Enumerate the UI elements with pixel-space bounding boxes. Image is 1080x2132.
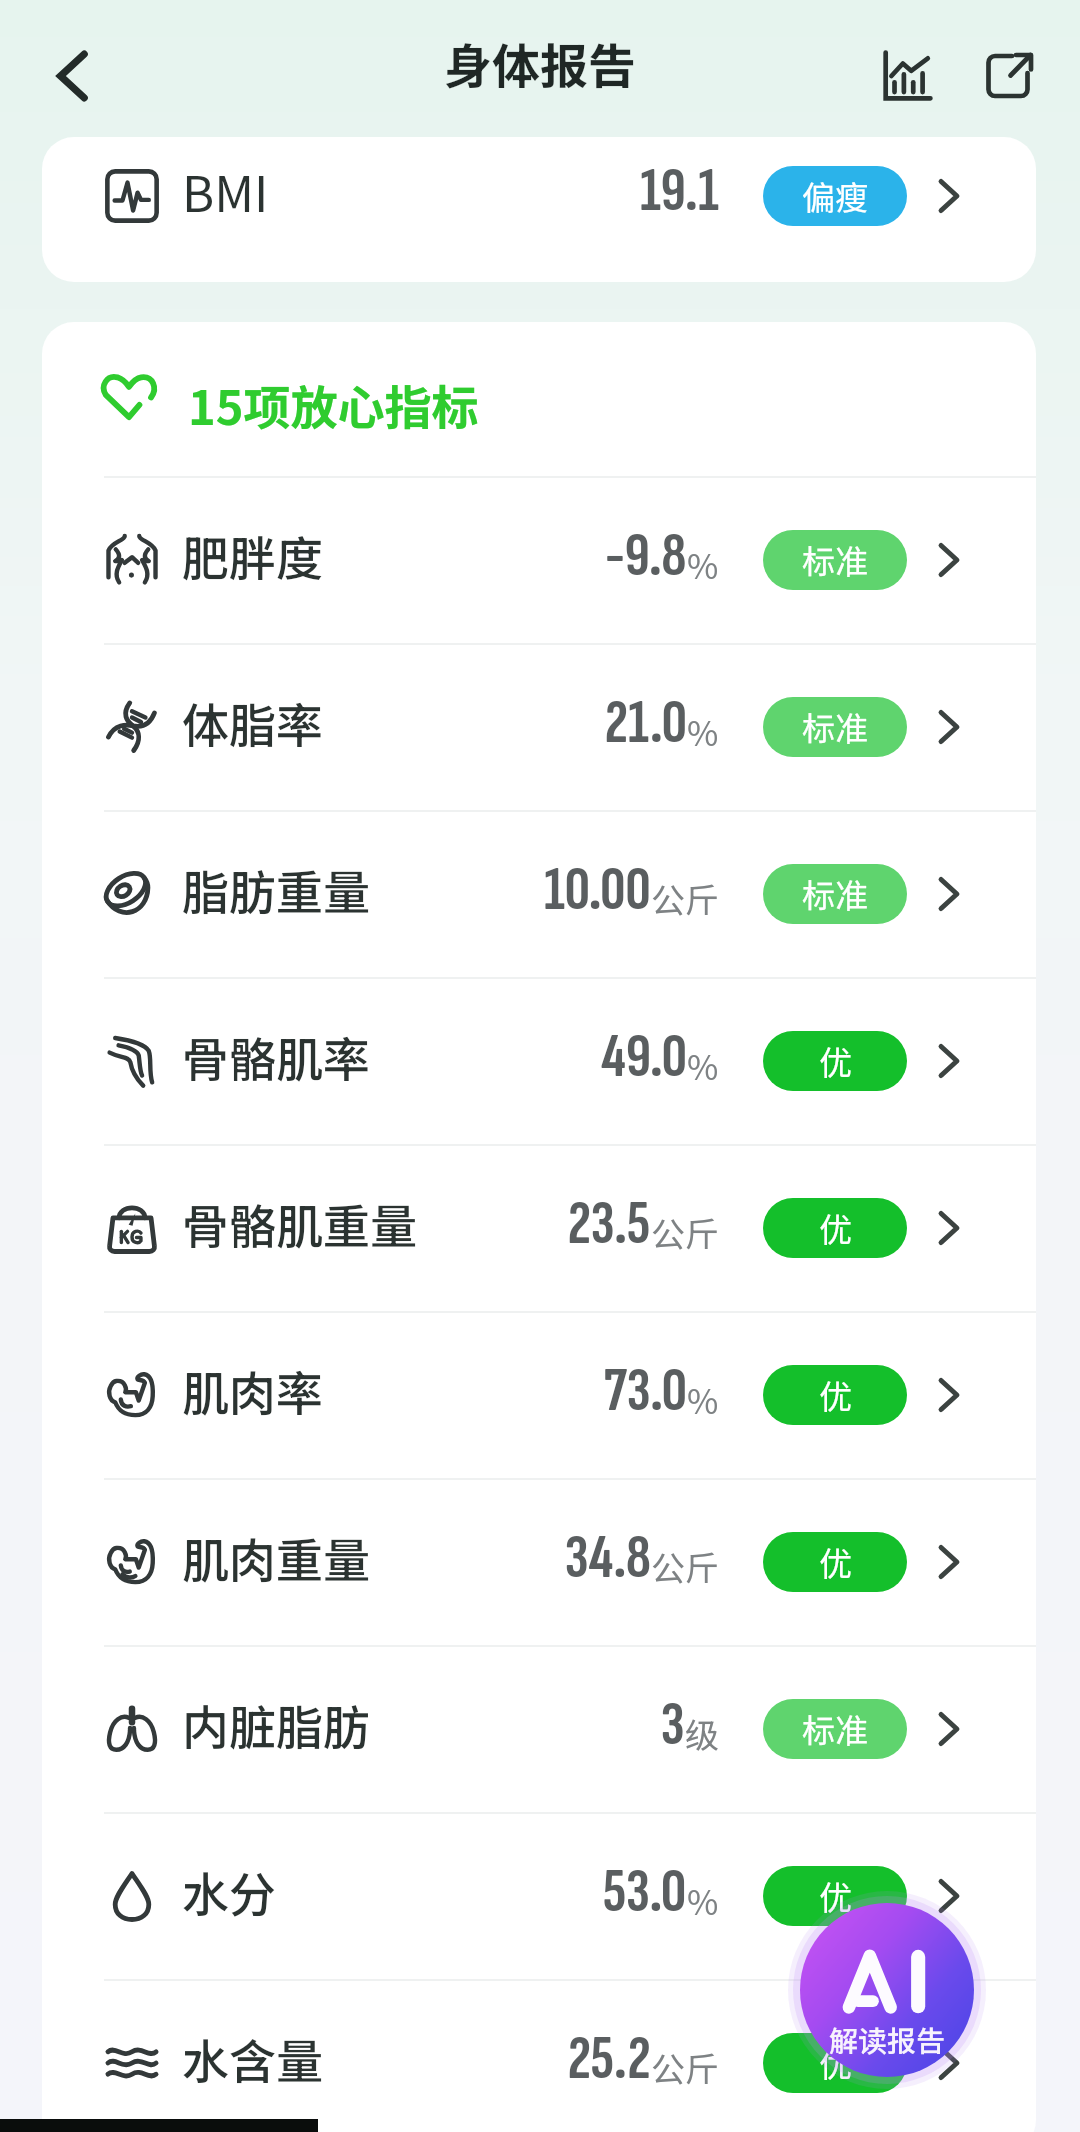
staticText: 73.0: [604, 1353, 687, 1429]
staticText: 骨骼肌率: [182, 1022, 370, 1090]
staticText: 标准: [802, 870, 868, 918]
staticText: 53.0: [603, 1854, 687, 1930]
staticText: 优: [819, 2039, 852, 2087]
button[interactable]: 肌肉重量: [42, 1480, 1036, 1645]
staticText: 水含量: [182, 2024, 323, 2092]
staticText: BMI: [182, 155, 269, 226]
button[interactable]: 内脏脂肪: [42, 1647, 1036, 1812]
button[interactable]: Share: [966, 33, 1052, 119]
staticText: 级: [685, 1709, 719, 1758]
button[interactable]: 水分: [42, 1814, 1036, 1979]
staticText: 公斤: [651, 2043, 719, 2092]
staticText: 标准: [802, 703, 868, 751]
staticText: 骨骼肌重量: [182, 1189, 417, 1257]
staticText: 标准: [802, 1705, 868, 1753]
staticText: 优: [819, 1037, 852, 1085]
staticText: 21.0: [605, 685, 687, 761]
button[interactable]: 肥胖度: [42, 478, 1036, 643]
staticText: 解读报告: [829, 2018, 946, 2060]
staticText: 优: [819, 1538, 852, 1586]
staticText: 肌肉重量: [182, 1523, 370, 1591]
button[interactable]: 水含量: [42, 1981, 1036, 2132]
staticText: 23.5: [568, 1186, 651, 1262]
staticText: %: [687, 1876, 719, 1925]
staticText: 3: [661, 1687, 685, 1763]
staticText: 公斤: [651, 1208, 719, 1257]
staticText: 15项放心指标: [188, 370, 479, 438]
button[interactable]: BMI: [42, 137, 1036, 255]
staticText: 优: [819, 1204, 852, 1252]
staticText: 25.2: [568, 2021, 651, 2097]
staticText: 34.8: [565, 1520, 651, 1596]
button[interactable]: 骨骼肌重量: [42, 1146, 1036, 1311]
staticText: %: [687, 540, 719, 589]
button[interactable]: AI 解读报告: [800, 1903, 974, 2077]
button[interactable]: 骨骼肌率: [42, 979, 1036, 1144]
staticText: 肌肉率: [182, 1356, 323, 1424]
staticText: 水分: [182, 1857, 276, 1925]
staticText: 公斤: [651, 1542, 719, 1591]
staticText: %: [687, 1375, 719, 1424]
staticText: 19.1: [640, 153, 719, 229]
staticText: 体脂率: [182, 688, 323, 756]
staticText: 优: [819, 1371, 852, 1419]
staticText: 偏瘦: [802, 172, 868, 220]
button[interactable]: 体脂率: [42, 645, 1036, 810]
staticText: 身体报告: [444, 28, 637, 98]
staticText: 脂肪重量: [182, 855, 370, 923]
staticText: 肥胖度: [182, 521, 323, 589]
button[interactable]: 肌肉率: [42, 1313, 1036, 1478]
staticText: %: [687, 707, 719, 756]
staticText: 标准: [802, 536, 868, 584]
button[interactable]: 脂肪重量: [42, 812, 1036, 977]
button[interactable]: Trend chart: [864, 33, 950, 119]
staticText: 10.00: [544, 852, 651, 928]
button[interactable]: 15项放心指标: [42, 322, 1036, 476]
staticText: -9.8: [605, 518, 687, 594]
staticText: 49.0: [601, 1019, 687, 1095]
staticText: 优: [819, 1872, 852, 1920]
staticText: %: [687, 1041, 719, 1090]
button[interactable]: Back: [29, 33, 115, 119]
staticText: 公斤: [651, 874, 719, 923]
staticText: 内脏脂肪: [182, 1690, 370, 1758]
